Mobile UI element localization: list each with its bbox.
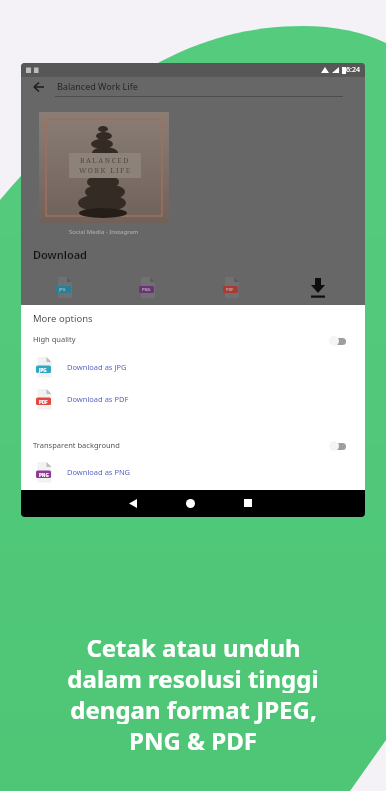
button[interactable] [182,495,198,511]
button[interactable] [125,495,141,511]
staticText: dalam resolusi tinggi [67,662,319,693]
button[interactable] [31,79,47,95]
staticText: Download [33,247,87,262]
button[interactable]: PDF [223,277,241,299]
staticText: dengan format JPEG, [70,693,317,724]
staticText: WORK LIFE [79,166,132,176]
staticText: High quality [33,334,76,344]
staticText: PDF [226,287,234,292]
staticText: Download as JPG [67,362,127,372]
staticText: More options [33,312,93,325]
staticText: JPG [39,367,47,373]
button[interactable] [307,276,329,300]
staticText: Download as PDF [67,394,129,404]
button[interactable]: PDF [36,389,236,410]
staticText: Balanced Work Life [57,80,138,92]
staticText: PNG [142,287,151,292]
staticText: Social Media - Instagram [69,228,139,236]
staticText: 6:24 [346,65,360,75]
staticText: JPG [59,287,66,292]
staticText: PNG [39,472,49,478]
staticText: PDF [39,399,48,405]
button[interactable]: JPG [56,277,74,299]
staticText: PNG & PDF [129,724,257,755]
button[interactable]: JPG [36,357,236,378]
button[interactable] [329,441,347,451]
button[interactable] [240,495,256,511]
staticText: BALANCED [80,156,130,166]
button[interactable] [329,336,347,346]
staticText: Download as PNG [67,467,131,477]
staticText: Transparent background [33,440,120,450]
button[interactable]: PNG [36,462,236,483]
staticText: Cetak atau unduh [86,631,301,662]
button[interactable]: PNG [139,277,157,299]
